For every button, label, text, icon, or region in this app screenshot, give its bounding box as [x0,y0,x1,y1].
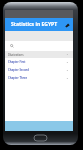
staticText: Chapter Second [8,68,66,72]
button[interactable]: More options [63,21,71,29]
button[interactable]: Chapter Second [5,66,73,74]
staticText: Chapter First [8,60,66,64]
button[interactable]: Home [34,135,47,141]
button[interactable]: Chapter Three [5,74,73,82]
button[interactable]: Chapter First [5,58,73,66]
staticText: Chapter Three [8,76,66,80]
staticText: Statistics in EGYPT [11,21,63,28]
staticText: Illustrations [8,53,66,57]
button[interactable]: Illustrations [5,51,73,58]
button[interactable]: Search [5,41,73,51]
other: Search [10,44,14,48]
